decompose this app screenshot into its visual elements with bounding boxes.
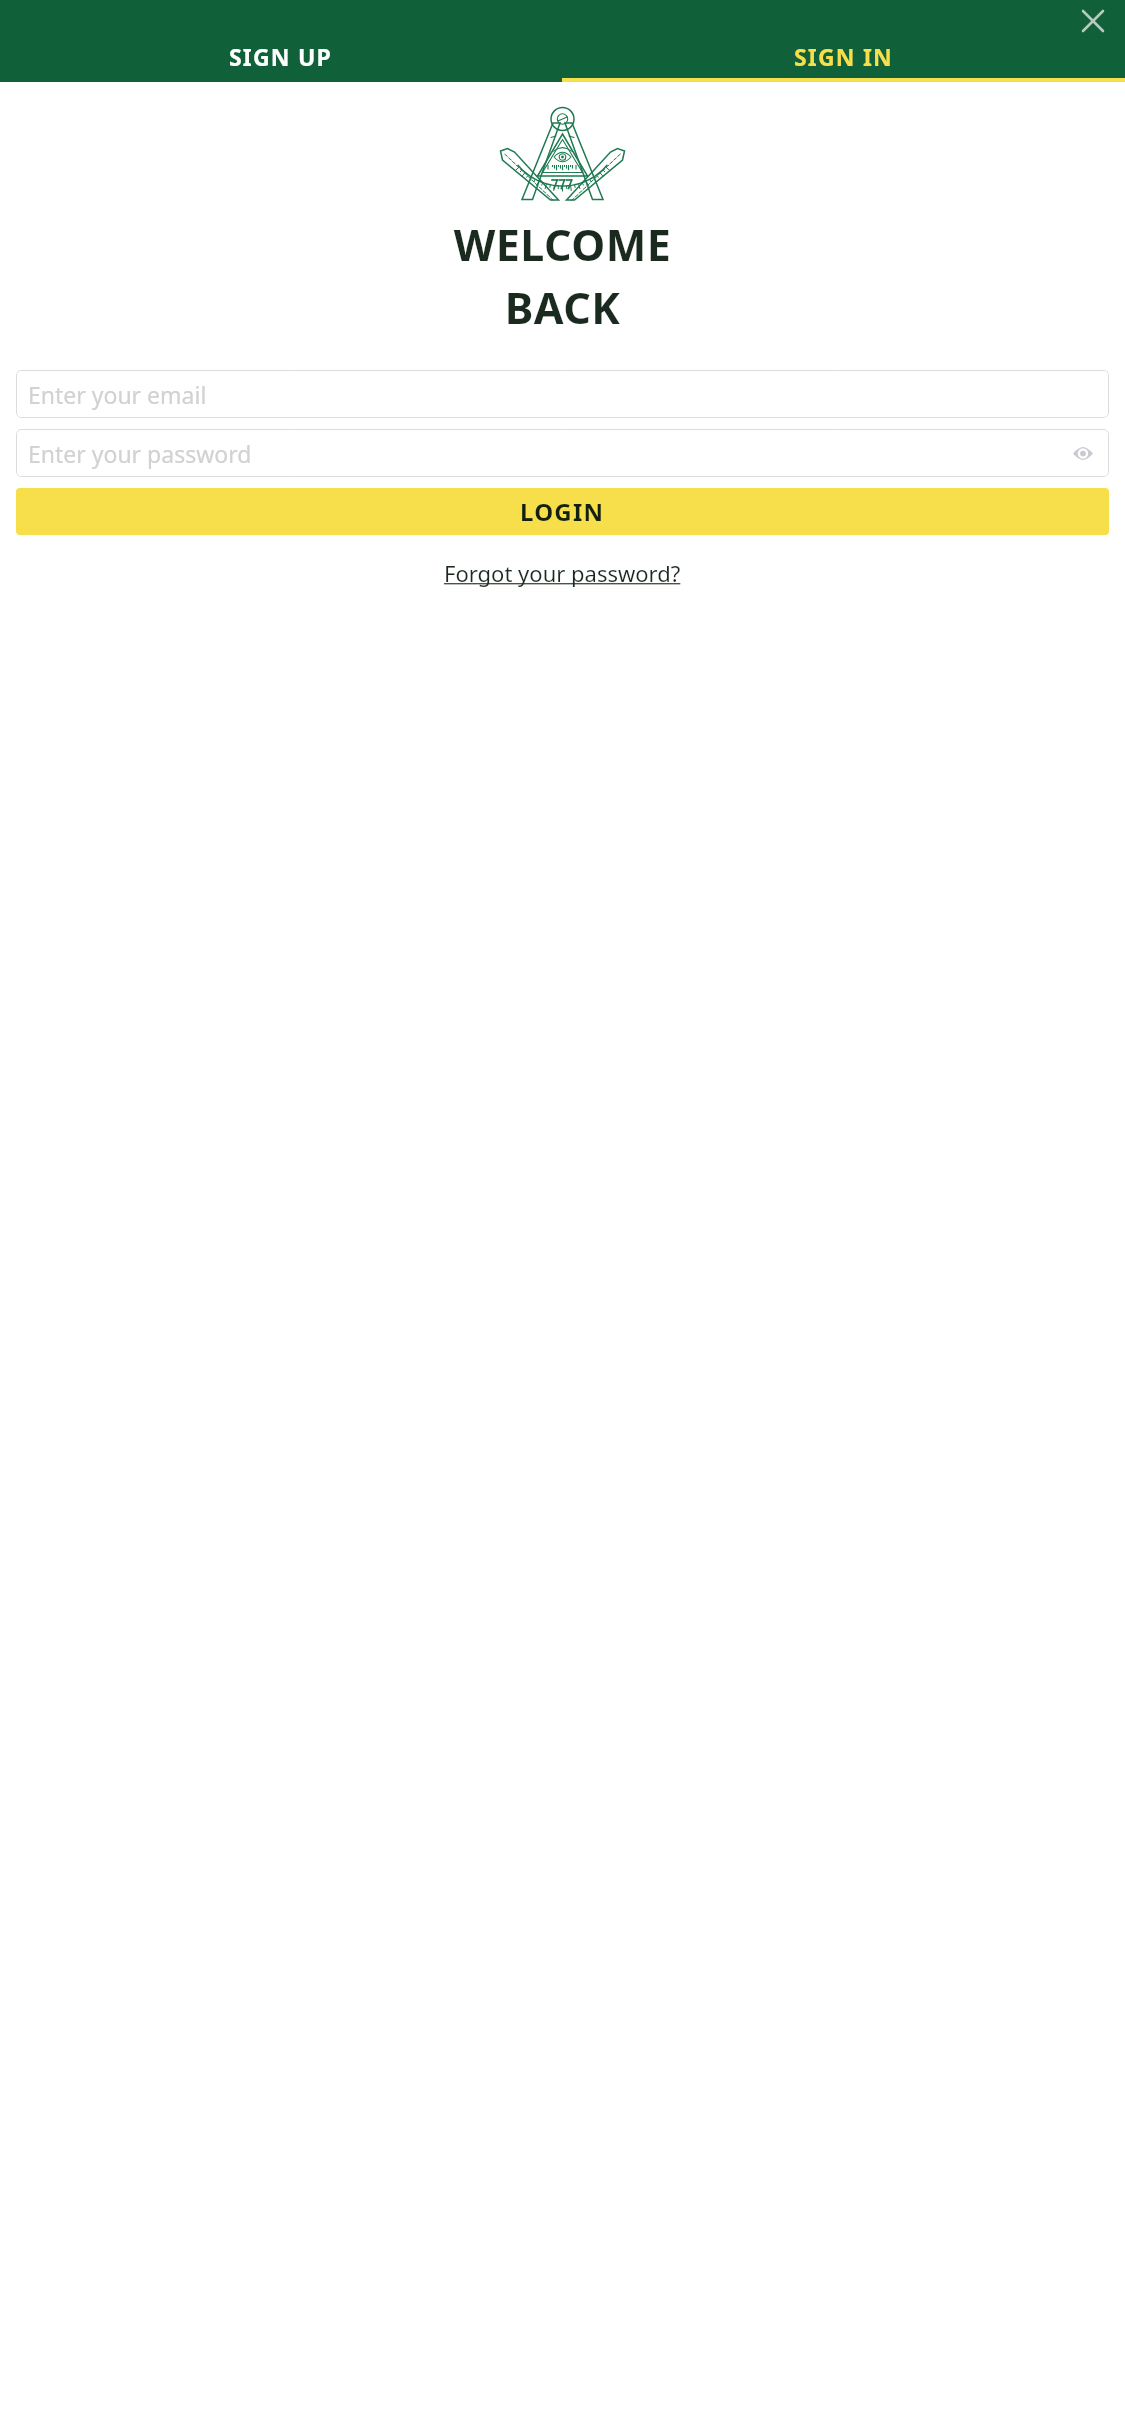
button[interactable]: Forgot your password? (436, 554, 689, 592)
staticText: LOGIN (520, 495, 605, 528)
button[interactable]: Enter your email (16, 370, 1109, 418)
staticText: Enter your email (28, 379, 207, 410)
button[interactable]: Enter your password (16, 429, 1109, 477)
button[interactable]: SIGN UP (0, 30, 562, 82)
staticText: Enter your password (28, 438, 252, 469)
button[interactable]: LOGIN (16, 488, 1109, 535)
staticText: BACK (0, 278, 1125, 337)
button[interactable]: SIGN IN (562, 30, 1125, 82)
button[interactable]: Close (1075, 3, 1111, 39)
staticText: SIGN IN (794, 41, 893, 72)
button[interactable]: Show password (1068, 438, 1098, 468)
staticText: WELCOME (0, 215, 1125, 274)
staticText: SIGN UP (229, 41, 333, 72)
